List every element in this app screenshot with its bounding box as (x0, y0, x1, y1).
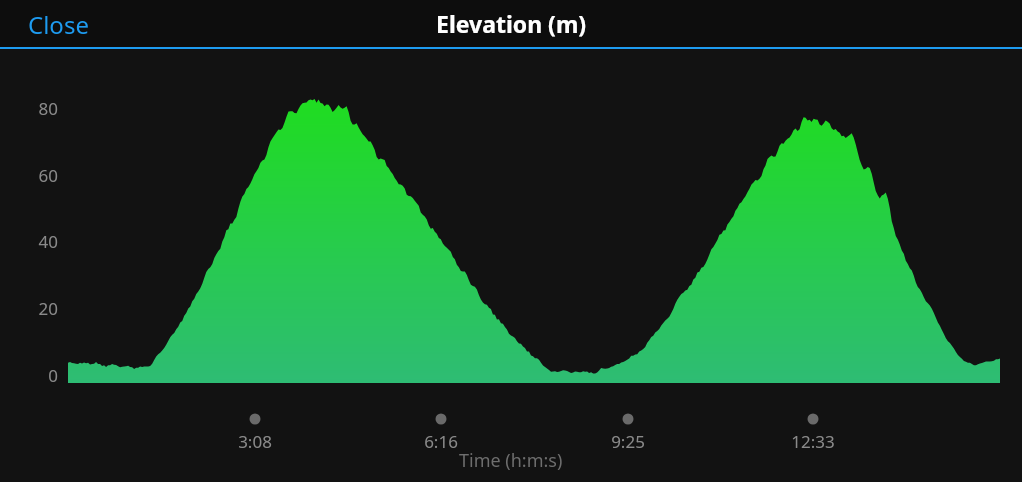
staticText: Elevation (m) (436, 8, 587, 39)
staticText: 9:25 (583, 430, 673, 453)
staticText: 3:08 (210, 430, 300, 453)
staticText: 12:33 (768, 430, 858, 453)
staticText: 6:16 (396, 430, 486, 453)
staticText: 20 (0, 297, 58, 320)
staticText: Time (h:m:s) (459, 448, 563, 473)
staticText: 0 (0, 364, 58, 387)
staticText: 40 (0, 230, 58, 253)
button[interactable]: Close (0, 0, 109, 47)
staticText: 60 (0, 164, 58, 187)
staticText: 80 (0, 97, 58, 120)
